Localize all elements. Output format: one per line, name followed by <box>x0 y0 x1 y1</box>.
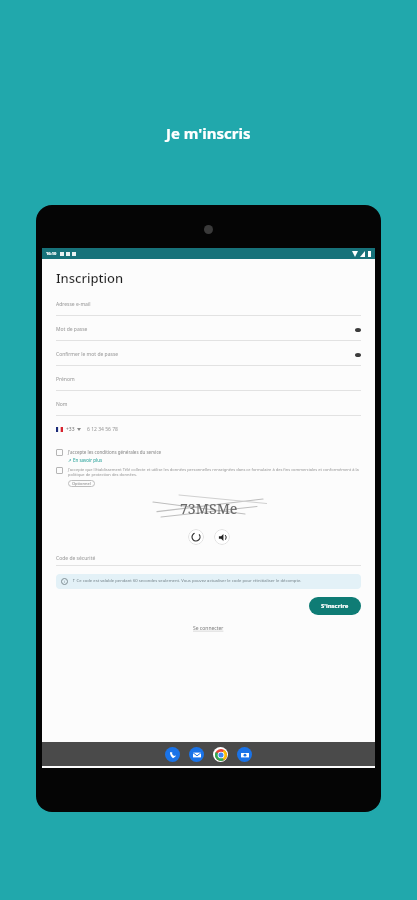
staticText: S'inscrire <box>321 602 349 610</box>
button[interactable]: Chrome <box>213 747 228 762</box>
button[interactable]: J'accepte les conditions générales du se… <box>56 449 361 463</box>
staticText: ↑ Ce code est valable pendant 60 seconde… <box>72 578 302 584</box>
staticText: 6 12 34 56 78 <box>87 426 118 433</box>
staticText: Code de sécurité <box>56 555 96 562</box>
button[interactable]: Appareil photo <box>237 747 252 762</box>
staticText: 16:10 <box>46 251 57 256</box>
button[interactable]: Messages <box>189 747 204 762</box>
staticText: 73MSMe <box>180 499 238 518</box>
other: Afficher le mot de passe <box>355 327 361 333</box>
button[interactable]: Confirmer le mot de passe <box>56 351 361 376</box>
staticText: Mot de passe <box>56 326 88 333</box>
button[interactable]: Prénom <box>56 376 361 401</box>
button[interactable]: J'accepte que l'établissement Télé colle… <box>56 467 361 487</box>
staticText: Optionnel <box>72 481 91 486</box>
staticText: +33 <box>66 426 75 433</box>
staticText: J'accepte que l'établissement Télé colle… <box>68 467 361 477</box>
other: Afficher le mot de passe <box>355 352 361 358</box>
staticText: Prénom <box>56 376 75 383</box>
staticText: Je m'inscris <box>166 123 251 143</box>
staticText: J'accepte les conditions générales du se… <box>68 449 162 455</box>
staticText: Nom <box>56 401 68 408</box>
button[interactable]: S'inscrire <box>309 597 361 615</box>
button[interactable]: Nom <box>56 401 361 426</box>
staticText: Confirmer le mot de passe <box>56 351 119 358</box>
button[interactable]: Téléphone <box>165 747 180 762</box>
staticText: ↗ En savoir plus <box>68 457 103 463</box>
staticText: Adresse e-mail <box>56 301 91 308</box>
staticText: i <box>64 579 66 584</box>
button[interactable]: Rafraîchir le code <box>188 529 204 545</box>
button[interactable]: Adresse e-mail <box>56 301 361 326</box>
button[interactable]: Écouter le code <box>214 529 230 545</box>
button[interactable]: Mot de passe <box>56 326 361 351</box>
staticText: Inscription <box>56 269 124 287</box>
button[interactable]: Se connecter <box>193 625 224 632</box>
button[interactable]: +33 <box>56 426 361 433</box>
